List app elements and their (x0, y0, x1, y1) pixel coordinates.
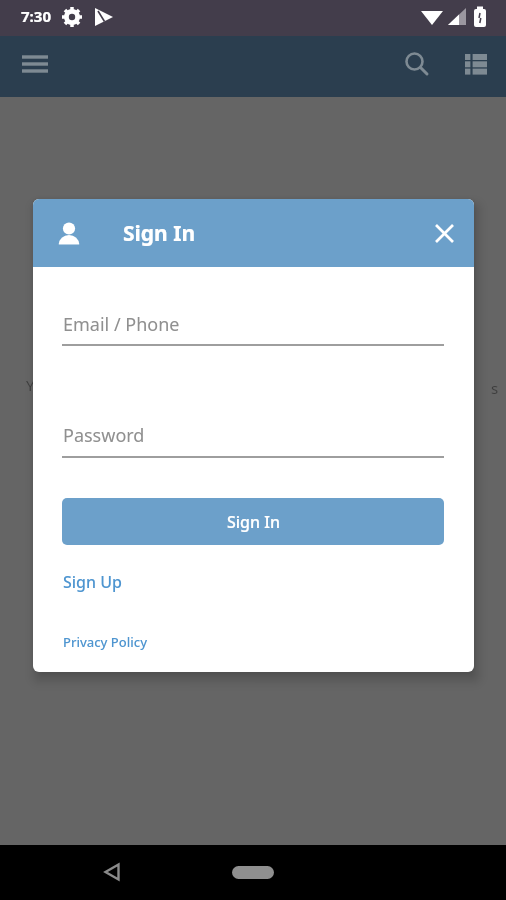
button[interactable] (13, 44, 57, 84)
staticText: Sign In (123, 219, 196, 248)
button[interactable] (395, 42, 439, 86)
button[interactable] (453, 42, 499, 86)
staticText: Sign In (227, 511, 280, 533)
button[interactable]: Sign Up (63, 571, 122, 593)
button[interactable] (88, 848, 136, 896)
staticText: Email / Phone (63, 312, 180, 337)
button[interactable] (229, 848, 277, 896)
staticText: Password (63, 423, 145, 448)
button[interactable]: Sign In (62, 498, 444, 545)
staticText: Sign Up (63, 571, 122, 593)
button[interactable]: Privacy Policy (63, 633, 147, 651)
staticText: s (491, 378, 499, 398)
staticText: Y (26, 375, 35, 395)
button[interactable] (422, 211, 466, 255)
staticText: 7:30 (21, 6, 51, 26)
staticText: Privacy Policy (63, 633, 147, 651)
